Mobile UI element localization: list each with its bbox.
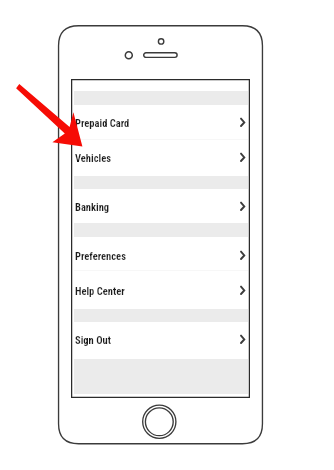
- staticText: Sign Out: [75, 334, 111, 346]
- staticText: Help Center: [75, 285, 125, 297]
- button[interactable]: Banking: [71, 194, 250, 218]
- button[interactable]: Preferences: [71, 243, 250, 267]
- staticText: Prepaid Card: [75, 117, 130, 129]
- other: Annotation arrow: [0, 0, 334, 470]
- button[interactable]: Help Center: [71, 278, 250, 302]
- button[interactable]: Prepaid Card: [71, 110, 250, 134]
- staticText: Preferences: [75, 250, 126, 262]
- button[interactable]: Vehicles: [71, 145, 250, 169]
- button[interactable]: Sign Out: [71, 327, 250, 351]
- staticText: Banking: [75, 201, 110, 213]
- staticText: Vehicles: [75, 152, 111, 164]
